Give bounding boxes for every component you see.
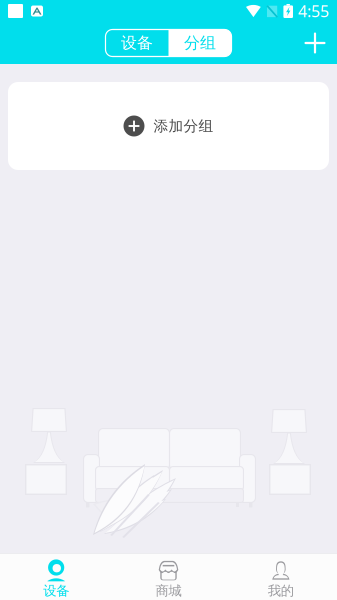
- button[interactable]: 设备: [105, 29, 168, 56]
- button[interactable]: 我的: [225, 553, 337, 600]
- staticText: 我的: [268, 583, 294, 599]
- staticText: 添加分组: [153, 117, 213, 135]
- button[interactable]: 分组: [168, 29, 231, 56]
- staticText: 设备: [121, 33, 153, 53]
- staticText: 分组: [184, 33, 216, 53]
- staticText: 4:55: [298, 0, 329, 22]
- button[interactable]: Add: [293, 22, 337, 64]
- button[interactable]: 添加分组: [8, 82, 329, 170]
- button[interactable]: 商城: [112, 553, 225, 600]
- staticText: 设备: [43, 583, 69, 599]
- button[interactable]: 设备: [0, 553, 112, 600]
- staticText: 商城: [155, 583, 181, 599]
